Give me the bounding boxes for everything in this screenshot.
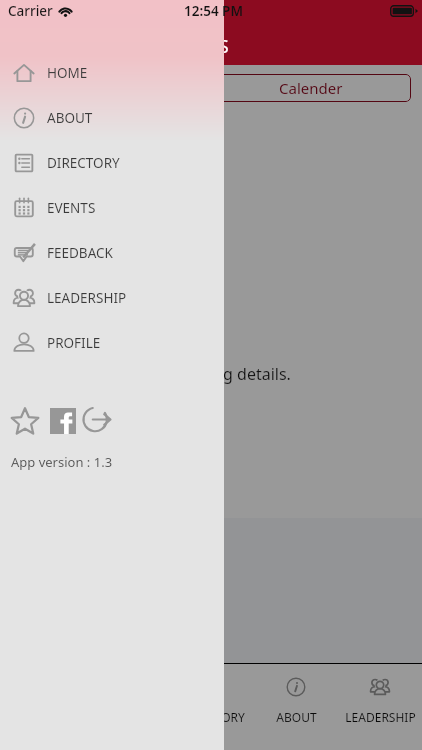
staticText: Carrier	[8, 2, 53, 20]
button[interactable]: Calender	[211, 74, 411, 102]
button[interactable]: FEEDBACK	[0, 230, 224, 275]
staticText: Calender	[279, 78, 343, 98]
button[interactable]: PROFILE	[0, 320, 224, 365]
staticText: DIRECTORY	[180, 709, 245, 725]
button[interactable]: Rate	[10, 406, 40, 436]
staticText: HOME	[47, 64, 88, 82]
button[interactable]: DIRECTORY	[170, 664, 254, 750]
button[interactable]: LEADERSHIP	[338, 664, 422, 750]
button[interactable]: Logout	[80, 404, 113, 437]
staticText: No upcoming details.	[131, 363, 291, 385]
button[interactable]: Facebook	[48, 406, 78, 436]
staticText: 12:54 PM	[184, 2, 243, 20]
button[interactable]: List	[11, 74, 210, 102]
button[interactable]: Close navigation drawer	[0, 65, 422, 750]
staticText: EVENTS	[47, 199, 96, 217]
button[interactable]: ABOUT	[254, 664, 338, 750]
button[interactable]: HOME	[0, 50, 224, 95]
staticText: App version : 1.3	[11, 453, 113, 471]
staticText: PROFILE	[47, 334, 101, 352]
staticText: EVENTS	[166, 34, 229, 58]
staticText: FEEDBACK	[47, 244, 113, 262]
staticText: LEADERSHIP	[47, 289, 127, 307]
staticText: DIRECTORY	[47, 154, 120, 172]
button[interactable]: ABOUT	[0, 95, 224, 140]
staticText: ABOUT	[276, 709, 317, 725]
button[interactable]: EVENTS	[0, 185, 224, 230]
button[interactable]: DIRECTORY	[0, 140, 224, 185]
staticText: LEADERSHIP	[345, 709, 416, 725]
button[interactable]: LEADERSHIP	[0, 275, 224, 320]
staticText: ABOUT	[47, 109, 93, 127]
